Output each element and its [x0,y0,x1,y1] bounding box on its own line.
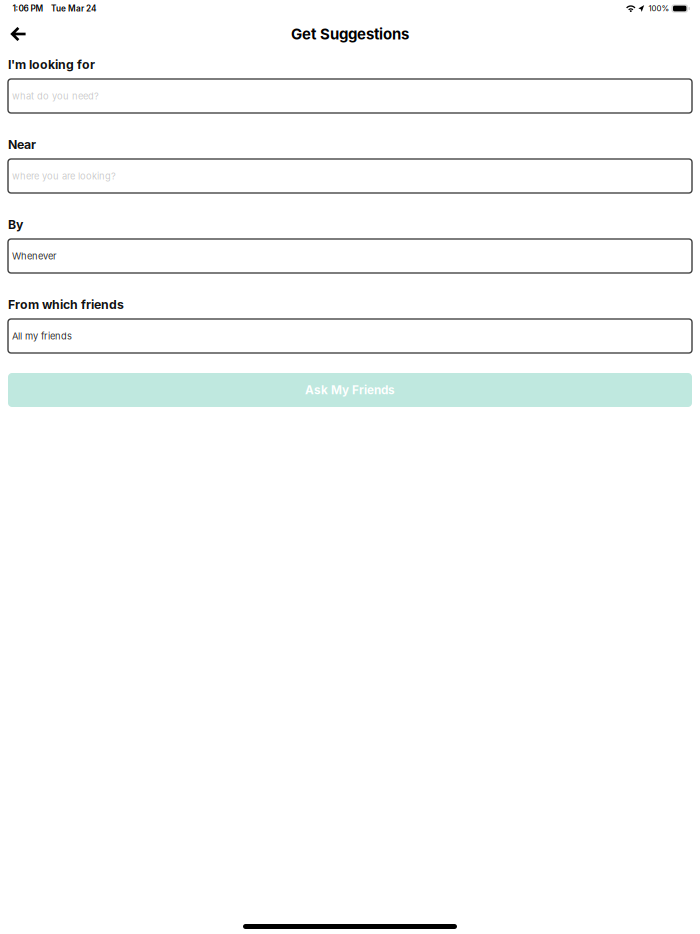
button[interactable]: Ask My Friends [8,373,692,407]
staticText: Near [8,137,36,152]
button[interactable]: Back [0,22,35,46]
staticText: Get Suggestions [291,25,409,43]
button[interactable]: Whenever [8,239,692,273]
staticText: Whenever [12,250,57,262]
staticText: what do you need? [12,90,99,102]
staticText: Ask My Friends [305,383,395,397]
button[interactable]: what do you need? [8,79,692,113]
staticText: From which friends [8,297,124,312]
staticText: where you are looking? [12,170,116,182]
staticText: All my friends [12,330,72,342]
staticText: 1:06 PM [12,3,43,13]
staticText: 100% [648,4,669,13]
button[interactable]: All my friends [8,319,692,353]
staticText: I'm looking for [8,57,95,72]
staticText: By [8,217,23,232]
staticText: Tue Mar 24 [51,3,97,13]
button[interactable]: where you are looking? [8,159,692,193]
